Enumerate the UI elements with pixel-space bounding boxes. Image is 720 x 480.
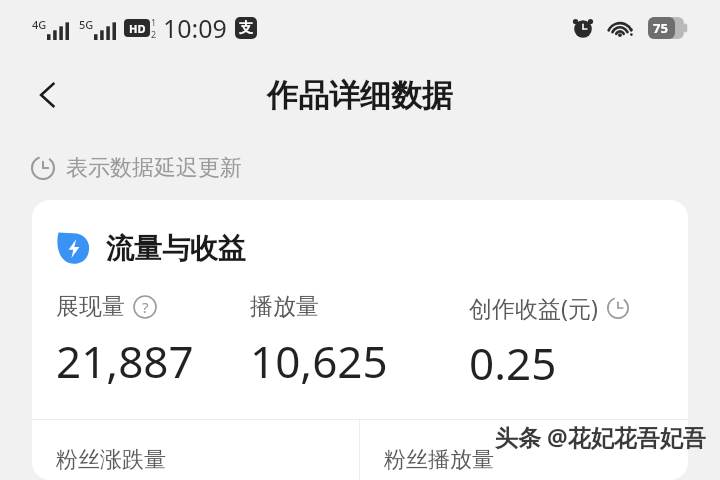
staticText: 21,887 xyxy=(56,331,194,391)
staticText: 4G xyxy=(32,17,47,32)
staticText: 10:09 xyxy=(163,11,227,45)
staticText: ? xyxy=(142,297,149,317)
staticText: 粉丝播放量 xyxy=(384,446,494,474)
button[interactable]: 创作收益(元) xyxy=(469,292,688,393)
staticText: 支 xyxy=(239,19,253,37)
staticText: 1 xyxy=(151,16,157,28)
button[interactable]: Back xyxy=(18,65,78,125)
staticText: 粉丝涨跌量 xyxy=(56,446,166,474)
staticText: 播放量 xyxy=(250,292,319,321)
staticText: 75 xyxy=(653,19,668,37)
staticText: HD xyxy=(129,21,146,36)
staticText: 创作收益(元) xyxy=(469,292,598,323)
staticText: 流量与收益 xyxy=(106,231,246,266)
staticText: 表示数据延迟更新 xyxy=(66,154,242,182)
staticText: 展现量 xyxy=(56,292,125,321)
staticText: 作品详细数据 xyxy=(267,76,453,115)
staticText: 2 xyxy=(151,28,157,40)
staticText: 0.25 xyxy=(469,333,557,393)
staticText: 10,625 xyxy=(250,331,388,391)
other: 说明 xyxy=(133,295,157,319)
button[interactable]: 展现量 xyxy=(56,292,250,391)
button[interactable]: 流量与收益 xyxy=(56,230,688,266)
staticText: 头条 @花妃花吾妃吾 xyxy=(495,421,706,452)
staticText: 5G xyxy=(79,17,94,32)
button[interactable]: 播放量 xyxy=(250,292,469,391)
